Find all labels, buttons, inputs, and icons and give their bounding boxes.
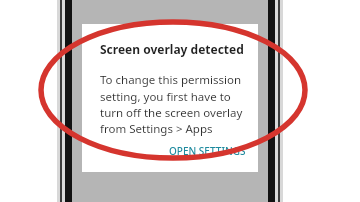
button[interactable]: OPEN SETTINGS (157, 138, 258, 164)
staticText: Screen overlay detected (100, 41, 244, 57)
staticText: To change this permission setting, you f… (100, 72, 248, 136)
staticText: OPEN SETTINGS (169, 144, 246, 158)
